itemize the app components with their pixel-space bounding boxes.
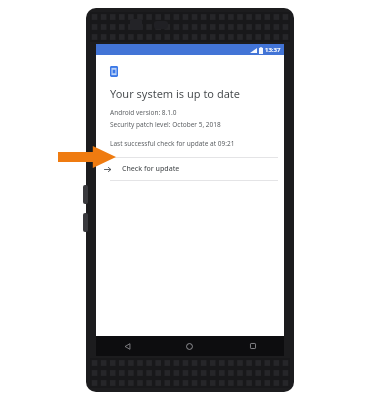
staticText: Your system is up to date: [110, 86, 240, 101]
staticText: Last successful check for update at 09:2…: [110, 139, 235, 148]
staticText: 13:37: [265, 46, 281, 54]
button[interactable]: Recent apps: [221, 336, 284, 356]
button[interactable]: Home: [158, 336, 221, 356]
button[interactable]: Check for update: [96, 158, 284, 180]
staticText: Android version: 8.1.0: [110, 108, 177, 117]
button[interactable]: Back: [96, 336, 158, 356]
staticText: Security patch level: October 5, 2018: [110, 120, 221, 129]
staticText: Check for update: [122, 164, 180, 174]
